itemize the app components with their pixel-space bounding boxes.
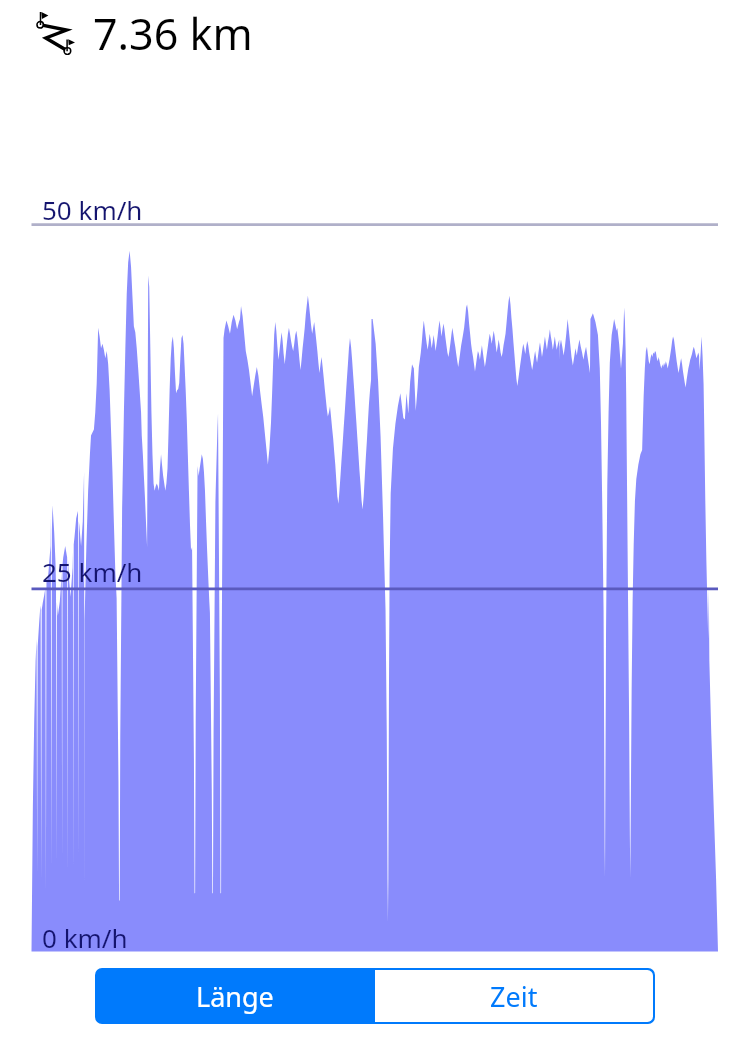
staticText: Länge (196, 978, 274, 1015)
staticText: Zeit (490, 978, 538, 1015)
button[interactable]: Länge (95, 968, 375, 1024)
staticText: 0 km/h (42, 920, 128, 955)
staticText: 7.36 km (93, 4, 253, 63)
button[interactable]: Zeit (375, 970, 653, 1022)
staticText: 25 km/h (42, 554, 143, 589)
staticText: 50 km/h (42, 192, 143, 227)
other: Route (28, 6, 84, 62)
